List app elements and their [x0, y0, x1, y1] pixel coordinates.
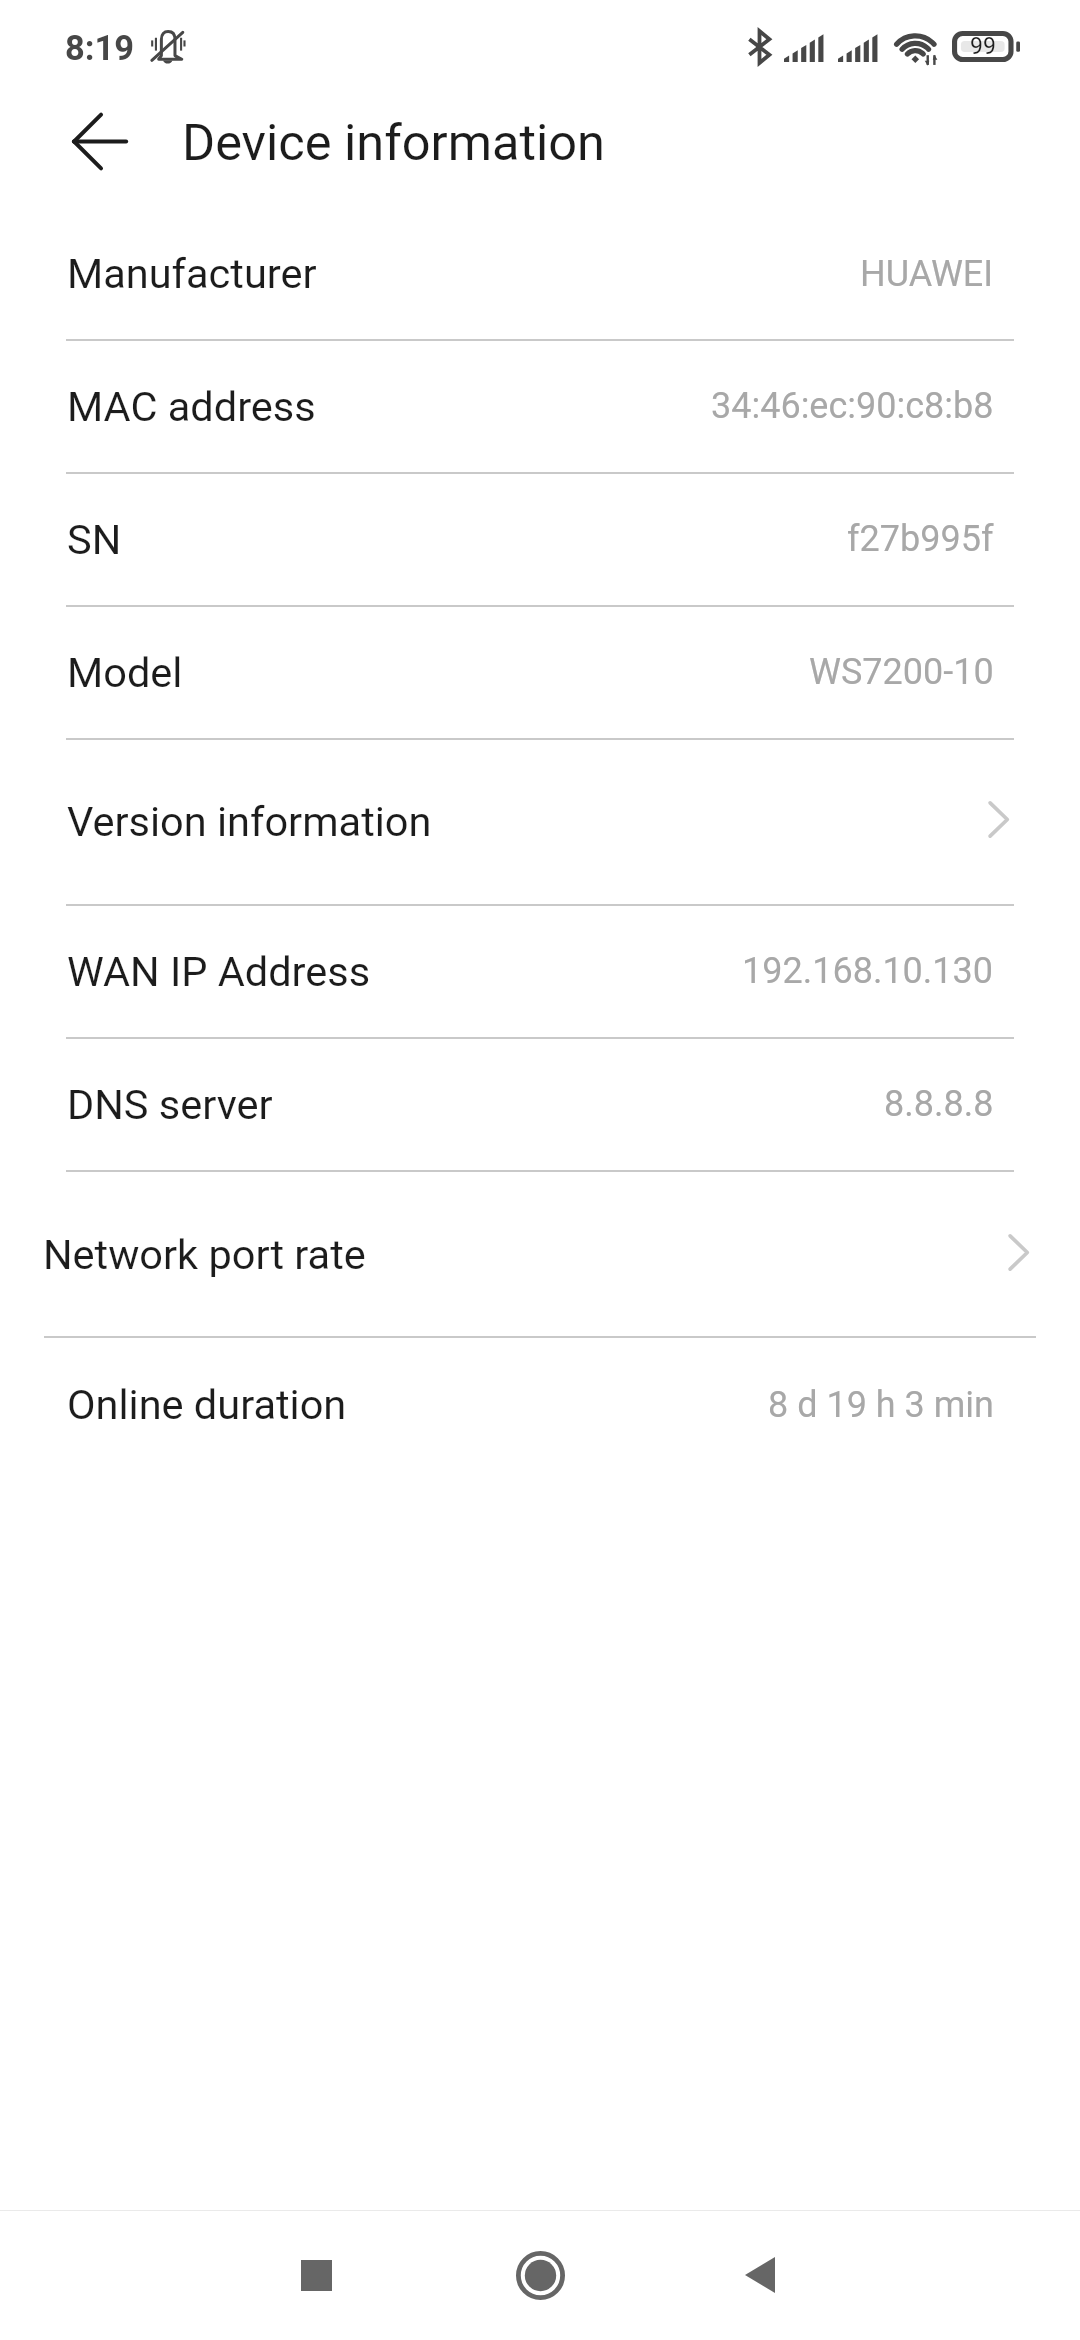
button[interactable]: Model — [0, 606, 1080, 738]
button[interactable]: Recent apps — [246, 2205, 386, 2340]
staticText: Manufacturer — [67, 249, 317, 298]
staticText: 34:46:ec:90:c8:b8 — [711, 385, 994, 427]
staticText: 192.168.10.130 — [742, 950, 994, 992]
staticText: HUAWEI — [860, 253, 994, 295]
button[interactable]: Home — [470, 2205, 610, 2340]
button[interactable]: Manufacturer — [0, 206, 1080, 339]
button[interactable]: Back — [690, 2205, 830, 2340]
button[interactable]: Version information — [0, 739, 1080, 904]
button[interactable]: Online duration — [0, 1337, 1080, 1470]
button[interactable]: DNS server — [0, 1038, 1080, 1170]
staticText: SN — [67, 515, 122, 564]
button[interactable]: Network port rate — [0, 1171, 1080, 1336]
button[interactable]: Back — [60, 101, 140, 181]
staticText: DNS server — [67, 1080, 273, 1129]
staticText: 99 — [970, 33, 996, 60]
staticText: Online duration — [67, 1380, 347, 1429]
staticText: Device information — [182, 113, 605, 172]
staticText: Version information — [67, 797, 432, 846]
button[interactable]: SN — [0, 473, 1080, 605]
staticText: f27b995f — [847, 518, 994, 560]
staticText: 8.8.8.8 — [884, 1083, 994, 1125]
staticText: 8 d 19 h 3 min — [768, 1384, 994, 1426]
button[interactable]: WAN IP Address — [0, 905, 1080, 1037]
staticText: Model — [67, 648, 183, 697]
button[interactable]: MAC address — [0, 340, 1080, 472]
staticText: WAN IP Address — [67, 947, 371, 996]
staticText: Network port rate — [43, 1230, 366, 1279]
staticText: 8:19 — [65, 28, 135, 68]
staticText: WS7200-10 — [809, 651, 994, 693]
staticText: MAC address — [67, 382, 316, 431]
